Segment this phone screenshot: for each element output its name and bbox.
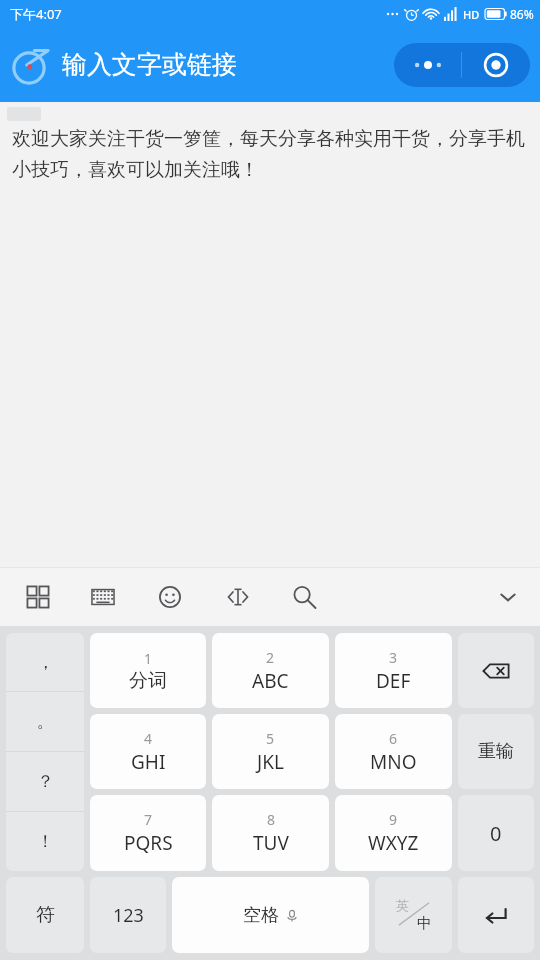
staticText: 6 <box>389 729 398 748</box>
button[interactable]: Search <box>286 579 322 615</box>
button[interactable]: ， <box>6 633 84 691</box>
staticText: DEF <box>376 668 411 694</box>
staticText: GHI <box>131 749 166 775</box>
button[interactable]: 4 <box>90 714 206 789</box>
staticText: 输入文字或链接 <box>62 49 237 80</box>
staticText: HD <box>463 7 480 22</box>
staticText: ABC <box>252 668 289 694</box>
button[interactable]: Hide keyboard <box>490 579 526 615</box>
button[interactable]: Backspace <box>458 633 534 708</box>
staticText: 86% <box>510 6 534 22</box>
staticText: 8 <box>267 810 276 829</box>
button[interactable]: 8 <box>212 795 329 871</box>
button[interactable]: 重输 <box>458 714 534 789</box>
staticText: 123 <box>113 903 144 928</box>
button[interactable]: Keyboard <box>85 579 121 615</box>
button[interactable]: 123 <box>90 877 166 953</box>
staticText: TUV <box>253 830 289 856</box>
button[interactable]: More options <box>394 43 461 87</box>
button[interactable]: 6 <box>335 714 452 789</box>
button[interactable]: 7 <box>90 795 206 871</box>
button[interactable]: 9 <box>335 795 452 871</box>
staticText: 5 <box>266 729 275 748</box>
staticText: 2 <box>266 648 275 667</box>
button[interactable]: 1 <box>90 633 206 708</box>
staticText: 分词 <box>129 669 167 693</box>
button[interactable]: 0 <box>458 795 534 871</box>
staticText: JKL <box>257 749 284 775</box>
staticText: 重输 <box>478 740 514 763</box>
staticText: 。 <box>37 711 54 732</box>
staticText: 9 <box>389 810 398 829</box>
staticText: 0 <box>490 820 502 847</box>
staticText: 3 <box>389 648 398 667</box>
button[interactable]: 空格 <box>172 877 369 953</box>
button[interactable]: Close <box>462 43 530 87</box>
button[interactable]: Logo <box>2 38 56 92</box>
staticText: 下午4:07 <box>10 5 62 23</box>
button[interactable]: Apps <box>20 579 56 615</box>
button[interactable]: Cursor <box>220 579 256 615</box>
staticText: 7 <box>144 810 153 829</box>
button[interactable]: Enter <box>458 877 534 953</box>
staticText: 欢迎大家关注干货一箩筐，每天分享各种实用干货，分享手机小技巧，喜欢可以加关注哦！ <box>12 127 528 182</box>
staticText: 4 <box>144 729 153 748</box>
button[interactable]: ？ <box>6 752 84 811</box>
button[interactable]: 符 <box>6 877 84 953</box>
staticText: ！ <box>37 831 54 852</box>
button[interactable]: ！ <box>6 812 84 871</box>
staticText: ？ <box>37 771 54 792</box>
staticText: 英 <box>396 897 409 913</box>
staticText: PQRS <box>124 830 173 856</box>
button[interactable]: 。 <box>6 692 84 751</box>
staticText: 中 <box>417 914 432 933</box>
button[interactable]: 3 <box>335 633 452 708</box>
staticText: 符 <box>36 903 55 927</box>
staticText: 空格 <box>243 904 279 927</box>
button[interactable]: 2 <box>212 633 329 708</box>
button[interactable]: 5 <box>212 714 329 789</box>
button[interactable]: Switch language <box>375 877 452 953</box>
button[interactable]: Emoji <box>152 579 188 615</box>
staticText: 1 <box>144 649 153 668</box>
staticText: MNO <box>370 749 417 775</box>
staticText: ， <box>37 652 54 673</box>
staticText: WXYZ <box>368 830 419 856</box>
